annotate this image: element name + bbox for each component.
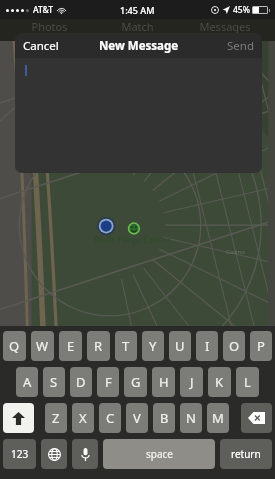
button[interactable]: Send — [219, 34, 262, 58]
button[interactable]: C — [99, 403, 121, 433]
staticText: J — [190, 373, 194, 391]
staticText: U — [175, 337, 185, 355]
staticText: Q — [9, 337, 20, 355]
button[interactable]: U — [169, 331, 191, 361]
staticText: G — [131, 373, 141, 391]
staticText: W — [36, 337, 49, 355]
button[interactable]: K — [208, 367, 231, 397]
button[interactable]: S — [43, 367, 65, 397]
staticText: A — [23, 373, 32, 391]
staticText: N — [186, 409, 196, 427]
button[interactable]: H — [152, 367, 175, 397]
staticText: 123 — [11, 447, 29, 461]
staticText: Z — [52, 409, 60, 427]
button[interactable]: B — [153, 403, 175, 433]
staticText: H — [159, 373, 169, 391]
staticText: I — [205, 337, 210, 355]
staticText: O — [229, 337, 240, 355]
button[interactable]: W — [31, 331, 54, 361]
button[interactable]: Backspace — [241, 403, 272, 433]
button[interactable]: I — [196, 331, 218, 361]
staticText: S — [50, 373, 58, 391]
button[interactable]: A — [16, 367, 38, 397]
button[interactable]: Y — [142, 331, 164, 361]
button[interactable]: space — [103, 439, 215, 469]
staticText: Cancel — [23, 38, 59, 54]
staticText: Photos — [31, 19, 68, 34]
staticText: Match — [121, 19, 154, 34]
button[interactable]: X — [72, 403, 94, 433]
button[interactable]: Z — [45, 403, 67, 433]
button[interactable]: R — [87, 331, 110, 361]
staticText: Casino — [226, 248, 245, 256]
button[interactable]: Q — [3, 331, 26, 361]
staticText: E — [67, 337, 75, 355]
staticText: M — [212, 409, 224, 427]
staticText: R — [94, 337, 103, 355]
staticText: return — [231, 447, 261, 461]
staticText: F — [105, 373, 112, 391]
staticText: space — [146, 447, 173, 461]
staticText: Messages — [199, 19, 251, 34]
staticText: T — [122, 337, 130, 355]
staticText: Wells Fargo Center — [94, 234, 171, 246]
button[interactable]: Shift — [3, 403, 34, 433]
button[interactable]: Dictate — [72, 439, 98, 469]
button[interactable]: E — [59, 331, 82, 361]
button[interactable]: G — [124, 367, 147, 397]
staticText: V — [133, 409, 141, 427]
button[interactable]: L — [236, 367, 259, 397]
button[interactable]: T — [115, 331, 137, 361]
button[interactable]: Cancel — [15, 34, 67, 58]
staticText: 1:45 AM — [120, 4, 155, 16]
staticText: Send — [227, 38, 254, 54]
button[interactable]: P — [250, 331, 272, 361]
staticText: L — [244, 373, 251, 391]
button[interactable]: O — [223, 331, 245, 361]
staticText: C — [106, 409, 115, 427]
staticText: AT&T — [33, 4, 54, 16]
button[interactable]: J — [180, 367, 203, 397]
button[interactable]: M — [207, 403, 229, 433]
staticText: 45% — [233, 4, 250, 16]
button[interactable]: N — [180, 403, 202, 433]
staticText: New Message — [99, 38, 179, 54]
button[interactable]: V — [126, 403, 148, 433]
button[interactable]: F — [97, 367, 119, 397]
button[interactable]: return — [220, 439, 272, 469]
button[interactable]: D — [70, 367, 92, 397]
staticText: X — [79, 409, 87, 427]
staticText: Y — [149, 337, 157, 355]
staticText: P — [257, 337, 265, 355]
button[interactable]: 123 — [3, 439, 36, 469]
staticText: K — [215, 373, 224, 391]
staticText: D — [76, 373, 86, 391]
button[interactable]: Change keyboard — [41, 439, 67, 469]
staticText: B — [160, 409, 169, 427]
